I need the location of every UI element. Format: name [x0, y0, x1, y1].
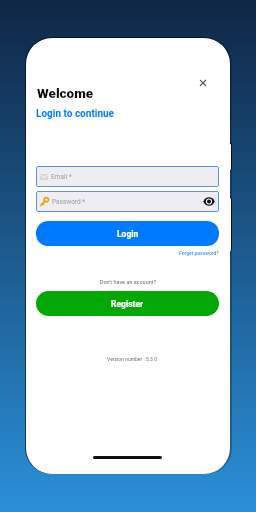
staticText: Email * [51, 173, 72, 181]
button[interactable]: Close [192, 72, 213, 93]
staticText: Password * [52, 198, 86, 206]
staticText: Forget password? [179, 250, 219, 256]
button[interactable]: Show password [185, 191, 219, 212]
button[interactable]: Email * [36, 166, 219, 187]
staticText: Login to continue [36, 108, 115, 120]
button[interactable]: Password * [36, 191, 219, 212]
button[interactable]: Register [36, 291, 219, 316]
staticText: Welcome [37, 85, 94, 101]
button[interactable]: Forget password? [166, 247, 219, 259]
staticText: Register [111, 299, 144, 309]
button[interactable]: Login [36, 221, 219, 246]
staticText: Don't have an account? [26, 279, 230, 285]
staticText: Login [117, 229, 139, 239]
staticText: Version number : 5.3.0 [30, 356, 230, 362]
